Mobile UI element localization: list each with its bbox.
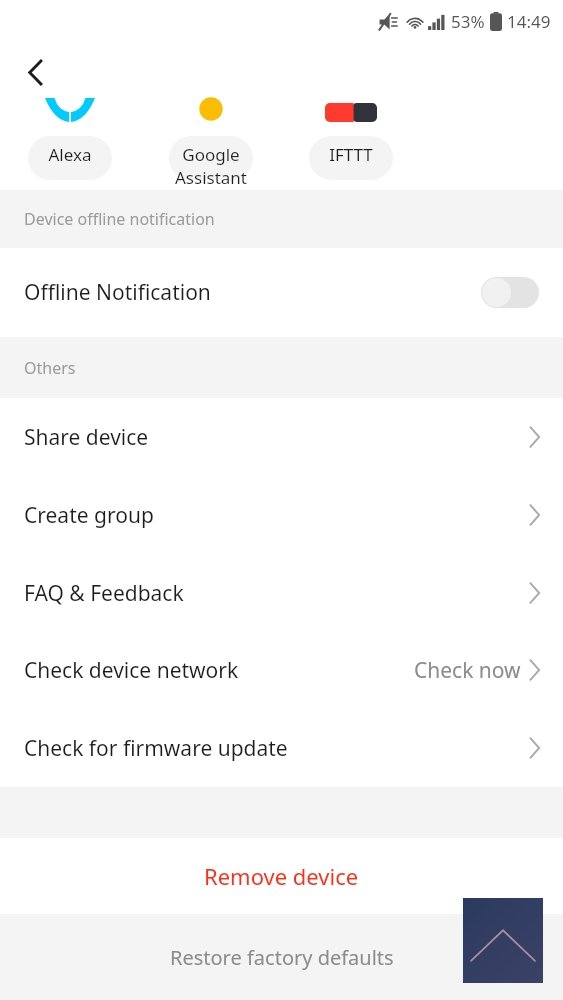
other: Offline Notification: [481, 277, 539, 308]
button[interactable]: Alexa: [10, 96, 130, 166]
staticText: 53%: [451, 10, 485, 33]
staticText: Restore factory defaults: [170, 944, 394, 971]
button[interactable]: Create group: [0, 476, 563, 554]
button[interactable]: Share device: [0, 398, 563, 476]
staticText: 14:49: [507, 10, 551, 33]
button[interactable]: Google Assistant: [151, 96, 271, 189]
button[interactable]: Offline Notification: [0, 248, 563, 337]
staticText: IFTTT: [329, 143, 373, 166]
staticText: Remove device: [204, 861, 359, 891]
button[interactable]: FAQ & Feedback: [0, 554, 563, 632]
button[interactable]: Expand panel: [463, 898, 543, 983]
button[interactable]: Back: [13, 50, 57, 94]
button[interactable]: Check device network: [0, 631, 563, 709]
staticText: Alexa: [48, 143, 92, 166]
staticText: Share device: [24, 423, 149, 452]
staticText: Check now: [414, 656, 521, 685]
staticText: Check for firmware update: [24, 734, 288, 763]
button[interactable]: IFTTT: [291, 96, 411, 166]
staticText: Others: [24, 357, 76, 379]
staticText: Device offline notification: [24, 208, 215, 230]
staticText: Check device network: [24, 656, 239, 685]
button[interactable]: Check for firmware update: [0, 709, 563, 787]
staticText: Create group: [24, 501, 154, 530]
button[interactable]: Remove device: [0, 838, 563, 914]
staticText: FAQ & Feedback: [24, 579, 184, 608]
staticText: Google Assistant: [175, 143, 247, 189]
staticText: Offline Notification: [24, 278, 211, 307]
button[interactable]: Restore factory defaults: [0, 914, 563, 1000]
